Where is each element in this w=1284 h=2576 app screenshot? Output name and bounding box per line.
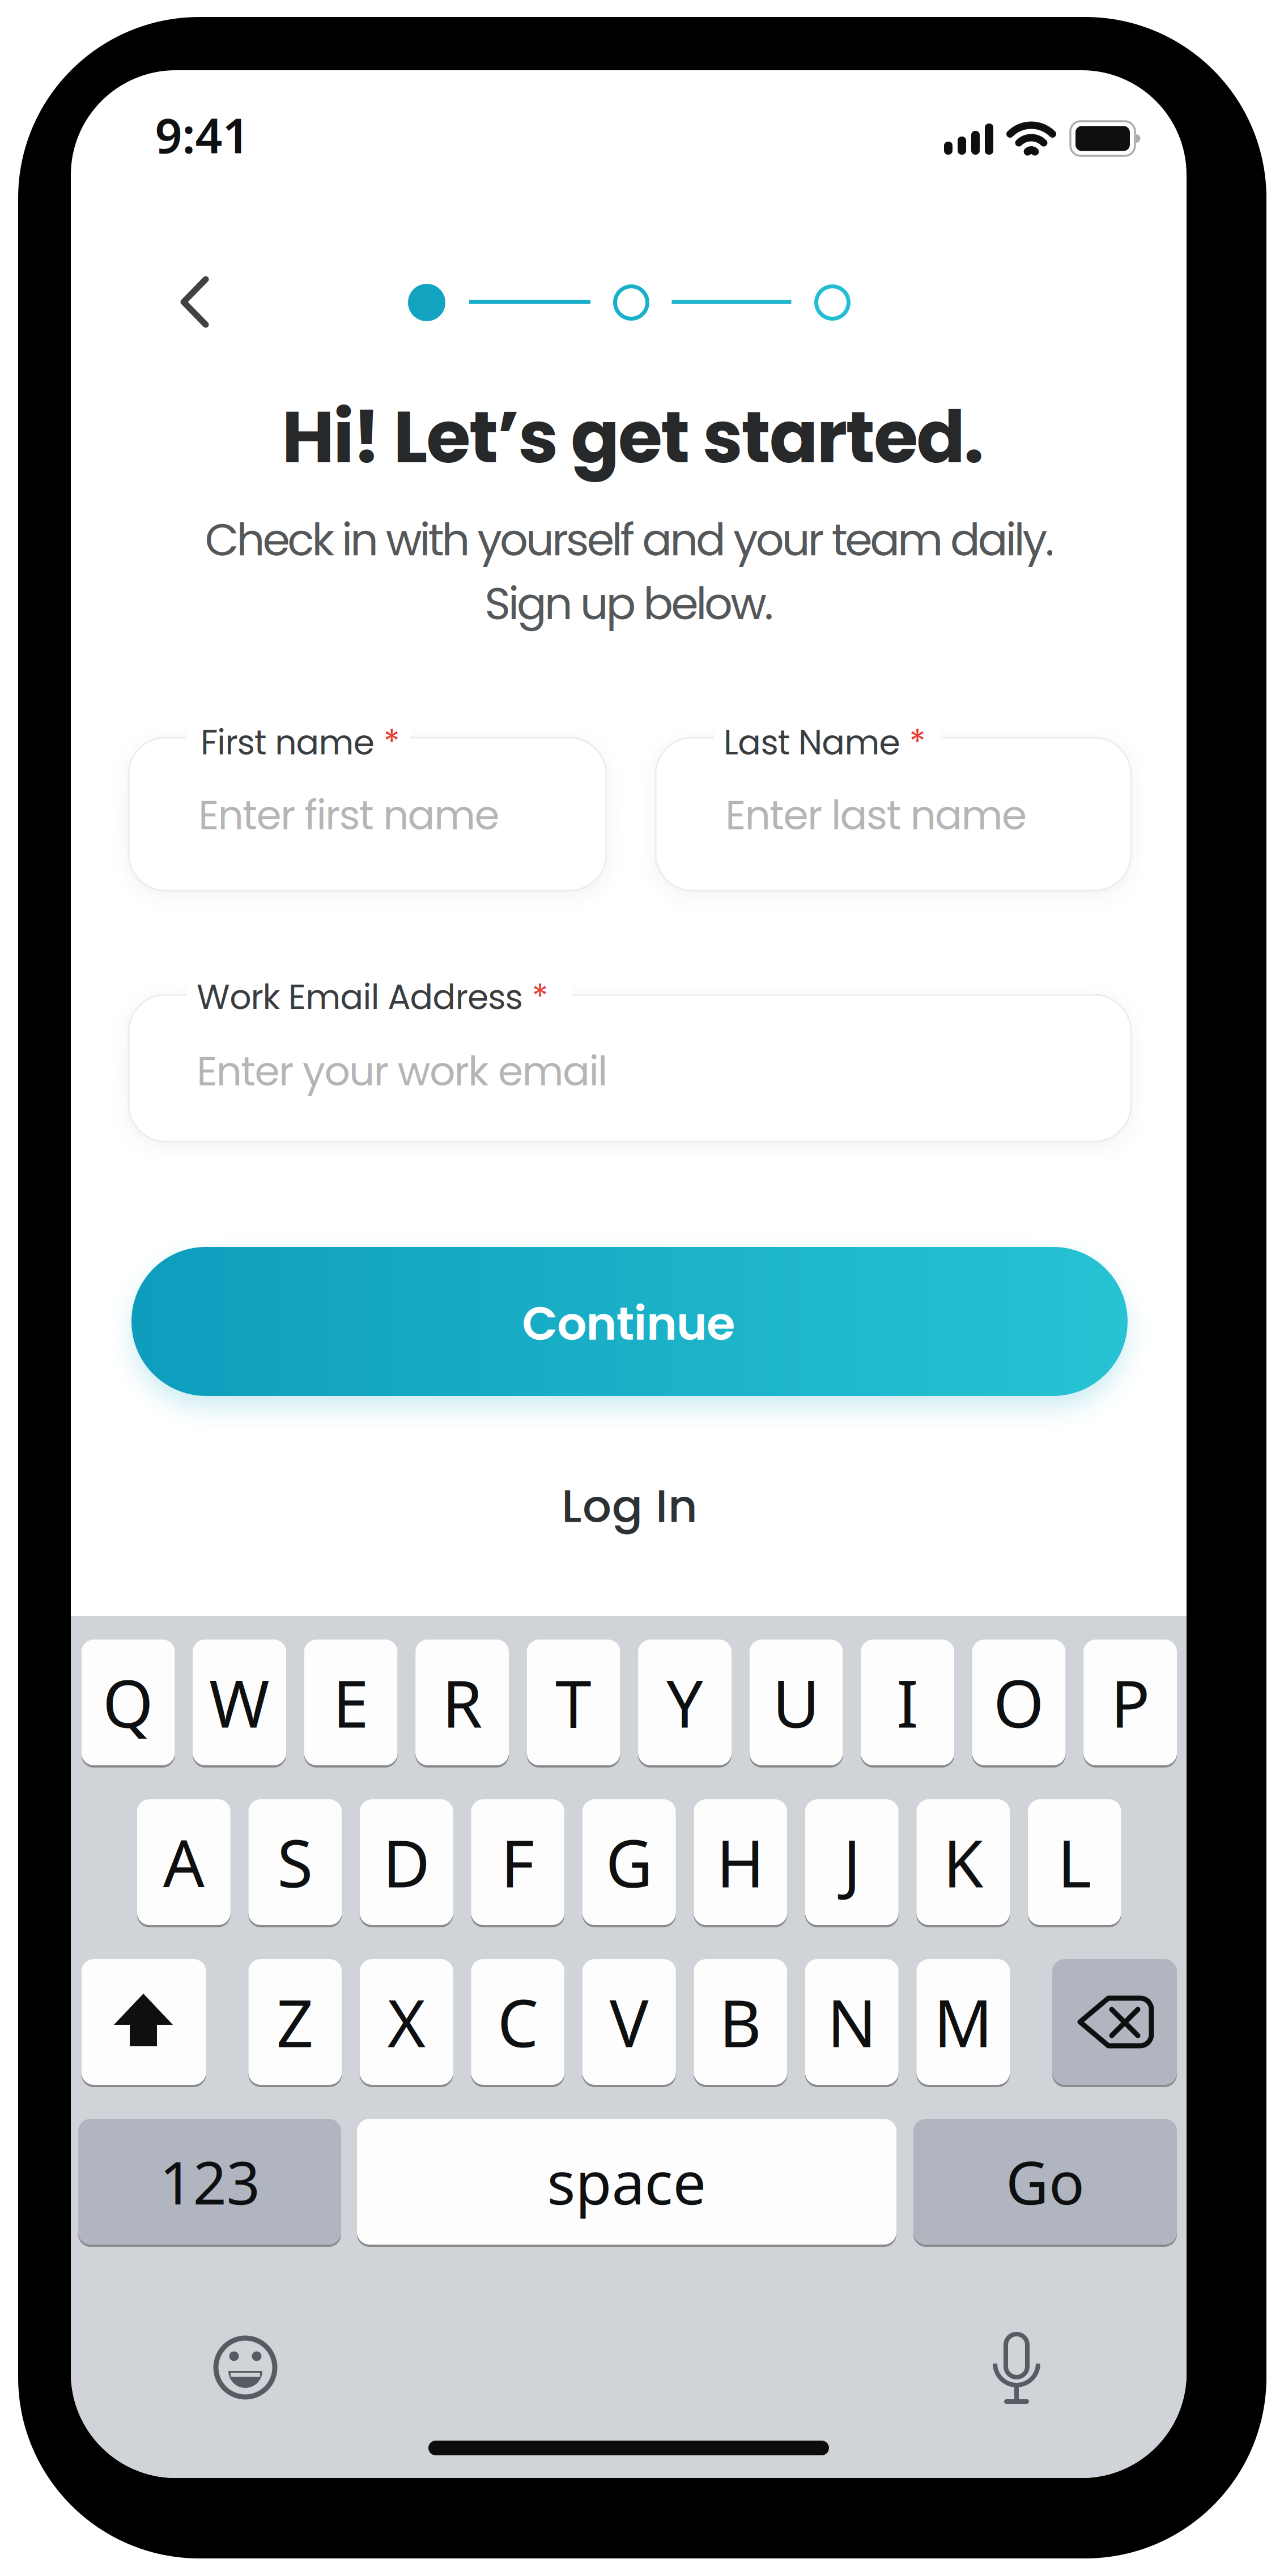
staticText: * — [384, 719, 400, 766]
button[interactable]: Work Email Address — [0, 0, 1284, 2576]
staticText: P — [1111, 1659, 1150, 1746]
staticText: J — [843, 1819, 861, 1905]
button[interactable]: First name — [0, 0, 1284, 2576]
button[interactable]: Last Name — [0, 0, 1284, 2576]
button[interactable]: S — [0, 0, 1284, 2576]
button[interactable]: Delete — [0, 0, 1284, 2576]
button[interactable]: R — [0, 0, 1284, 2576]
staticText: Enter last name — [725, 787, 1027, 843]
staticText: Hi! Let’s get started. — [282, 387, 984, 487]
button[interactable]: M — [0, 0, 1284, 2576]
button[interactable]: H — [0, 0, 1284, 2576]
staticText: U — [772, 1659, 820, 1746]
staticText: W — [209, 1659, 270, 1746]
button[interactable]: Y — [0, 0, 1284, 2576]
button[interactable]: I — [0, 0, 1284, 2576]
button[interactable]: B — [0, 0, 1284, 2576]
button[interactable]: T — [0, 0, 1284, 2576]
button[interactable]: L — [0, 0, 1284, 2576]
staticText: Z — [276, 1979, 314, 2065]
staticText: T — [555, 1659, 592, 1746]
button[interactable]: Back — [0, 0, 1284, 2576]
button[interactable]: J — [0, 0, 1284, 2576]
button[interactable]: D — [0, 0, 1284, 2576]
button[interactable]: Emoji — [0, 0, 1284, 2576]
staticText: Enter first name — [198, 787, 499, 843]
button[interactable]: Z — [0, 0, 1284, 2576]
button[interactable]: C — [0, 0, 1284, 2576]
button[interactable]: E — [0, 0, 1284, 2576]
staticText: O — [993, 1659, 1044, 1746]
staticText: R — [442, 1659, 482, 1746]
staticText: A — [163, 1819, 204, 1905]
button[interactable]: Continue — [0, 0, 1284, 2576]
staticText: H — [716, 1819, 765, 1905]
staticText: I — [896, 1659, 919, 1746]
staticText: Continue — [522, 1291, 735, 1356]
button[interactable]: G — [0, 0, 1284, 2576]
staticText: B — [719, 1979, 762, 2065]
staticText: Go — [1006, 2143, 1085, 2221]
button[interactable]: Dictate — [0, 0, 1284, 2576]
button[interactable]: Q — [0, 0, 1284, 2576]
button[interactable]: F — [0, 0, 1284, 2576]
staticText: F — [501, 1819, 535, 1905]
staticText: 123 — [160, 2143, 260, 2221]
button[interactable]: Numbers — [0, 0, 1284, 2576]
button[interactable]: P — [0, 0, 1284, 2576]
staticText: Y — [666, 1659, 703, 1746]
staticText: Enter your work email — [197, 1043, 607, 1099]
button[interactable]: K — [0, 0, 1284, 2576]
button[interactable]: W — [0, 0, 1284, 2576]
button[interactable]: O — [0, 0, 1284, 2576]
staticText: 9:41 — [155, 103, 250, 166]
button[interactable]: Go — [0, 0, 1284, 2576]
staticText: G — [606, 1819, 653, 1905]
staticText: * — [909, 719, 926, 766]
staticText: C — [497, 1979, 538, 2065]
staticText: Log In — [562, 1474, 698, 1538]
staticText: Sign up below. — [485, 573, 773, 635]
button[interactable]: N — [0, 0, 1284, 2576]
button[interactable]: X — [0, 0, 1284, 2576]
staticText: E — [333, 1659, 369, 1746]
staticText: V — [610, 1979, 649, 2065]
staticText: Last Name — [724, 719, 900, 766]
staticText: L — [1058, 1819, 1092, 1905]
staticText: K — [943, 1819, 983, 1905]
staticText: M — [934, 1979, 993, 2065]
staticText: D — [383, 1819, 430, 1905]
button[interactable]: A — [0, 0, 1284, 2576]
staticText: X — [387, 1979, 425, 2065]
button[interactable]: V — [0, 0, 1284, 2576]
button[interactable]: Log In — [0, 0, 1284, 2576]
staticText: space — [547, 2143, 706, 2221]
button[interactable]: U — [0, 0, 1284, 2576]
staticText: First name — [201, 719, 374, 766]
staticText: Work Email Address — [197, 973, 523, 1021]
staticText: * — [532, 973, 548, 1021]
staticText: S — [277, 1819, 313, 1905]
staticText: Check in with yourself and your team dai… — [205, 509, 1054, 571]
staticText: N — [827, 1979, 876, 2065]
button[interactable]: space — [0, 0, 1284, 2576]
staticText: Q — [103, 1659, 154, 1746]
button[interactable]: Shift — [0, 0, 1284, 2576]
